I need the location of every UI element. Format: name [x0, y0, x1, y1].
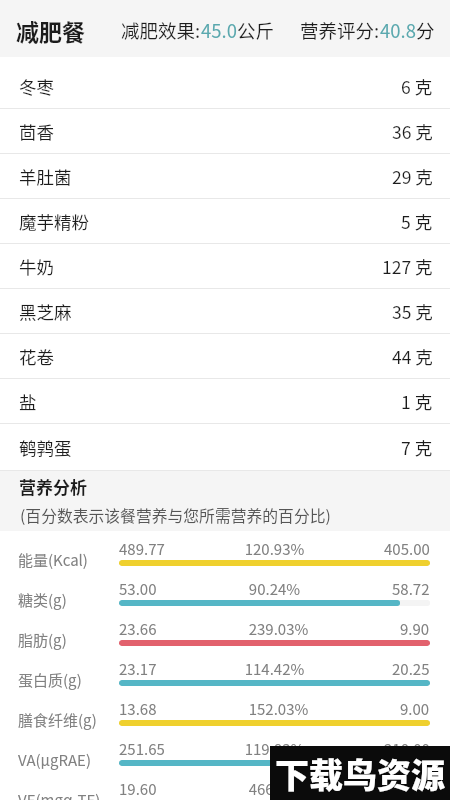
staticText: 35 克 [392, 299, 433, 324]
staticText: 羊肚菌 [19, 164, 72, 189]
staticText: 下载鸟资源 [275, 749, 445, 798]
staticText: VA(μgRAE) [18, 749, 91, 771]
staticText: 114.42% [157, 658, 392, 680]
staticText: 7 克 [401, 435, 433, 460]
button[interactable]: 能量(Kcal) [0, 531, 450, 571]
button[interactable]: 蛋白质(g) [0, 651, 450, 691]
staticText: 489.77 [119, 538, 165, 560]
staticText: 能量(Kcal) [18, 549, 88, 571]
staticText: 糖类(g) [18, 589, 67, 611]
button[interactable]: 盐 [0, 379, 450, 424]
button[interactable]: 鹌鹑蛋 [0, 424, 450, 471]
staticText: 减肥效果: [121, 17, 201, 44]
staticText: 分 [416, 17, 435, 44]
staticText: 44 克 [392, 344, 433, 369]
button[interactable]: VE(mgα-TE) [0, 771, 450, 800]
button[interactable]: 糖类(g) [0, 571, 450, 611]
staticText: 127 克 [382, 254, 433, 279]
staticText: 4.20 [400, 778, 430, 800]
staticText: 20.25 [392, 658, 430, 680]
button[interactable]: 冬枣 [0, 64, 450, 109]
staticText: 牛奶 [19, 254, 54, 279]
staticText: 6 克 [401, 74, 433, 99]
staticText: 冬枣 [19, 74, 54, 99]
staticText: 黑芝麻 [19, 299, 72, 324]
staticText: 40.8 [380, 17, 416, 44]
staticText: 29 克 [392, 164, 433, 189]
staticText: 膳食纤维(g) [18, 709, 97, 731]
staticText: 152.03% [157, 698, 400, 720]
button[interactable]: VA(μgRAE) [0, 731, 450, 771]
staticText: 花卷 [19, 344, 54, 369]
button[interactable]: 营养评分: [300, 17, 435, 44]
button[interactable]: 牛奶 [0, 244, 450, 289]
staticText: 脂肪(g) [18, 629, 67, 651]
button[interactable]: 花卷 [0, 334, 450, 379]
staticText: 36 克 [392, 119, 433, 144]
staticText: 23.66 [119, 618, 157, 640]
staticText: (百分数表示该餐营养与您所需营养的百分比) [20, 504, 331, 527]
staticText: 盐 [19, 389, 37, 414]
staticText: 53.00 [119, 578, 157, 600]
staticText: 251.65 [119, 738, 165, 760]
staticText: 公斤 [237, 17, 275, 44]
button[interactable]: 减肥效果: [121, 17, 275, 44]
staticText: 58.72 [392, 578, 430, 600]
staticText: 90.24% [157, 578, 392, 600]
staticText: 120.93% [165, 538, 384, 560]
staticText: 210.00 [384, 738, 430, 760]
staticText: 13.68 [119, 698, 157, 720]
staticText: 19.60 [119, 778, 157, 800]
button[interactable]: 黑芝麻 [0, 289, 450, 334]
staticText: 魔芋精粉 [19, 209, 89, 234]
staticText: 9.00 [400, 698, 430, 720]
staticText: 239.03% [157, 618, 400, 640]
staticText: 9.90 [400, 618, 430, 640]
staticText: 蛋白质(g) [18, 669, 82, 691]
staticText: VE(mgα-TE) [18, 789, 101, 800]
staticText: 鹌鹑蛋 [19, 435, 72, 460]
staticText: 减肥餐 [16, 14, 85, 47]
staticText: 466.60% [157, 778, 400, 800]
button[interactable]: 羊肚菌 [0, 154, 450, 199]
staticText: 1 克 [401, 389, 433, 414]
staticText: 23.17 [119, 658, 157, 680]
staticText: 5 克 [401, 209, 433, 234]
button[interactable]: 脂肪(g) [0, 611, 450, 651]
button[interactable]: 膳食纤维(g) [0, 691, 450, 731]
staticText: 营养评分: [300, 17, 380, 44]
staticText: 119.83% [165, 738, 384, 760]
staticText: 405.00 [384, 538, 430, 560]
staticText: 茴香 [19, 119, 54, 144]
button[interactable]: 茴香 [0, 109, 450, 154]
staticText: 45.0 [201, 17, 237, 44]
button[interactable]: 魔芋精粉 [0, 199, 450, 244]
staticText: 营养分析 [19, 474, 87, 499]
